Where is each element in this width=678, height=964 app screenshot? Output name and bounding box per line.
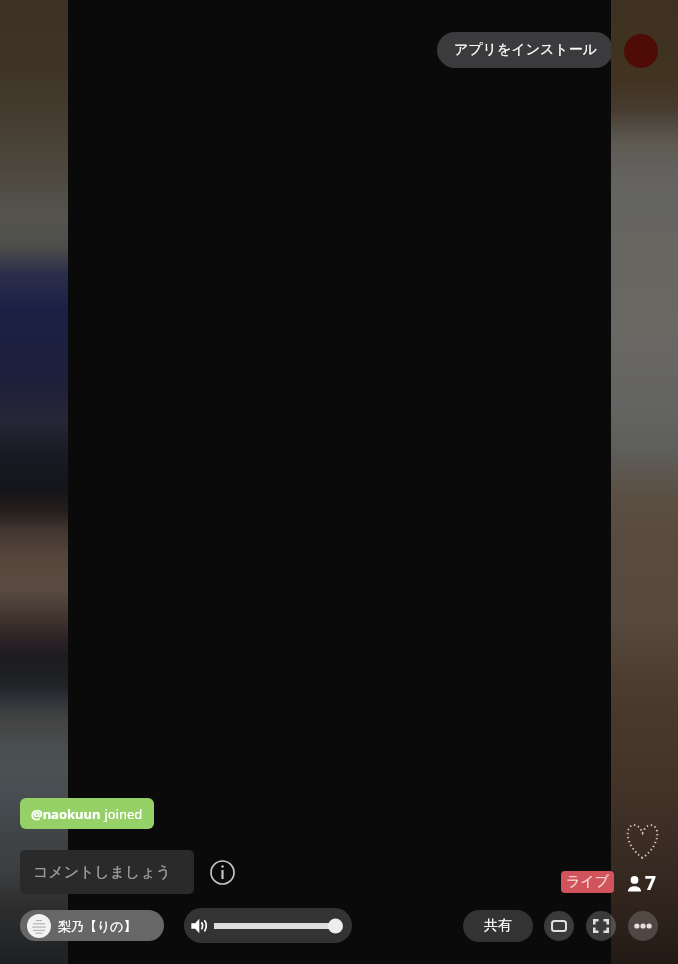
staticText: コメントしましょう (33, 863, 172, 882)
staticText: @naokuun (31, 805, 101, 823)
button[interactable]: 共有 (463, 910, 533, 942)
button[interactable]: コメントしましょう (20, 850, 194, 894)
button[interactable]: Picture in picture (544, 911, 574, 941)
button[interactable]: Mute (191, 918, 207, 934)
button[interactable]: Like (623, 823, 662, 859)
staticText: joined (101, 805, 143, 823)
staticText: アプリをインストール (454, 41, 597, 59)
button[interactable]: 梨乃【りの】 (20, 910, 164, 941)
button[interactable]: Fullscreen (586, 911, 616, 941)
staticText: ライブ (566, 873, 609, 891)
button[interactable]: Information (208, 858, 236, 886)
staticText: 共有 (484, 917, 512, 935)
staticText: 梨乃【りの】 (58, 918, 137, 934)
staticText: 7 (645, 870, 656, 896)
button[interactable]: アプリをインストール (437, 32, 611, 68)
button[interactable]: More options (628, 911, 658, 941)
